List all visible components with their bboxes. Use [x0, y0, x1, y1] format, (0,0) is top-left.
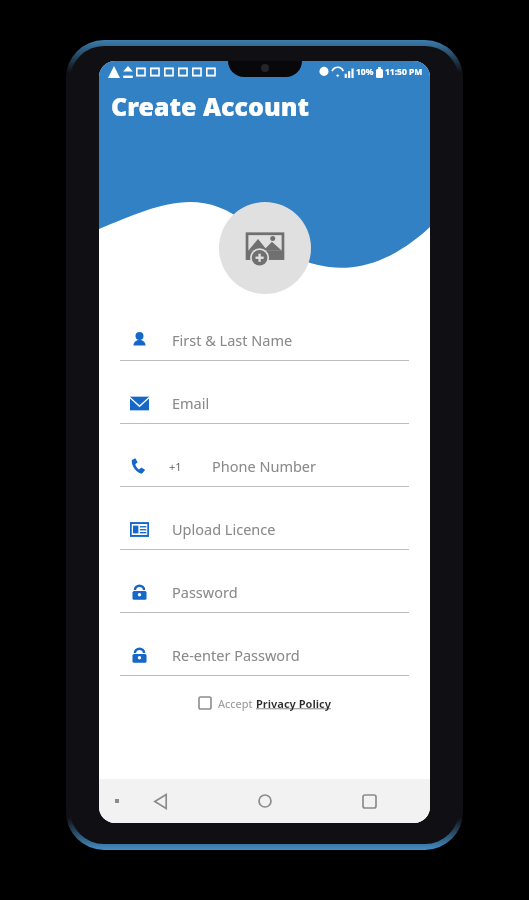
- button[interactable]: Home: [248, 784, 282, 818]
- button[interactable]: Add profile photo: [219, 202, 311, 294]
- staticText: Privacy Policy: [256, 696, 331, 711]
- staticText: Accept: [218, 696, 256, 711]
- button[interactable]: Email: [120, 386, 409, 424]
- staticText: Upload Licence: [172, 519, 276, 539]
- staticText: 10%: [356, 66, 374, 78]
- button[interactable]: Upload Licence: [120, 512, 409, 550]
- staticText: Password: [172, 582, 238, 602]
- staticText: Email: [172, 393, 210, 413]
- button[interactable]: +1: [120, 449, 409, 487]
- staticText: Re-enter Password: [172, 645, 300, 665]
- staticText: Create Account: [111, 89, 309, 123]
- button[interactable]: Re-enter Password: [120, 638, 409, 676]
- button[interactable]: Accept: [120, 690, 409, 716]
- staticText: 11:50 PM: [385, 66, 423, 78]
- button[interactable]: Recent apps: [352, 784, 386, 818]
- staticText: Phone Number: [212, 456, 317, 476]
- button[interactable]: Password: [120, 575, 409, 613]
- button[interactable]: First & Last Name: [120, 323, 409, 361]
- staticText: +1: [169, 459, 182, 474]
- staticText: First & Last Name: [172, 330, 293, 350]
- button[interactable]: Back: [143, 784, 177, 818]
